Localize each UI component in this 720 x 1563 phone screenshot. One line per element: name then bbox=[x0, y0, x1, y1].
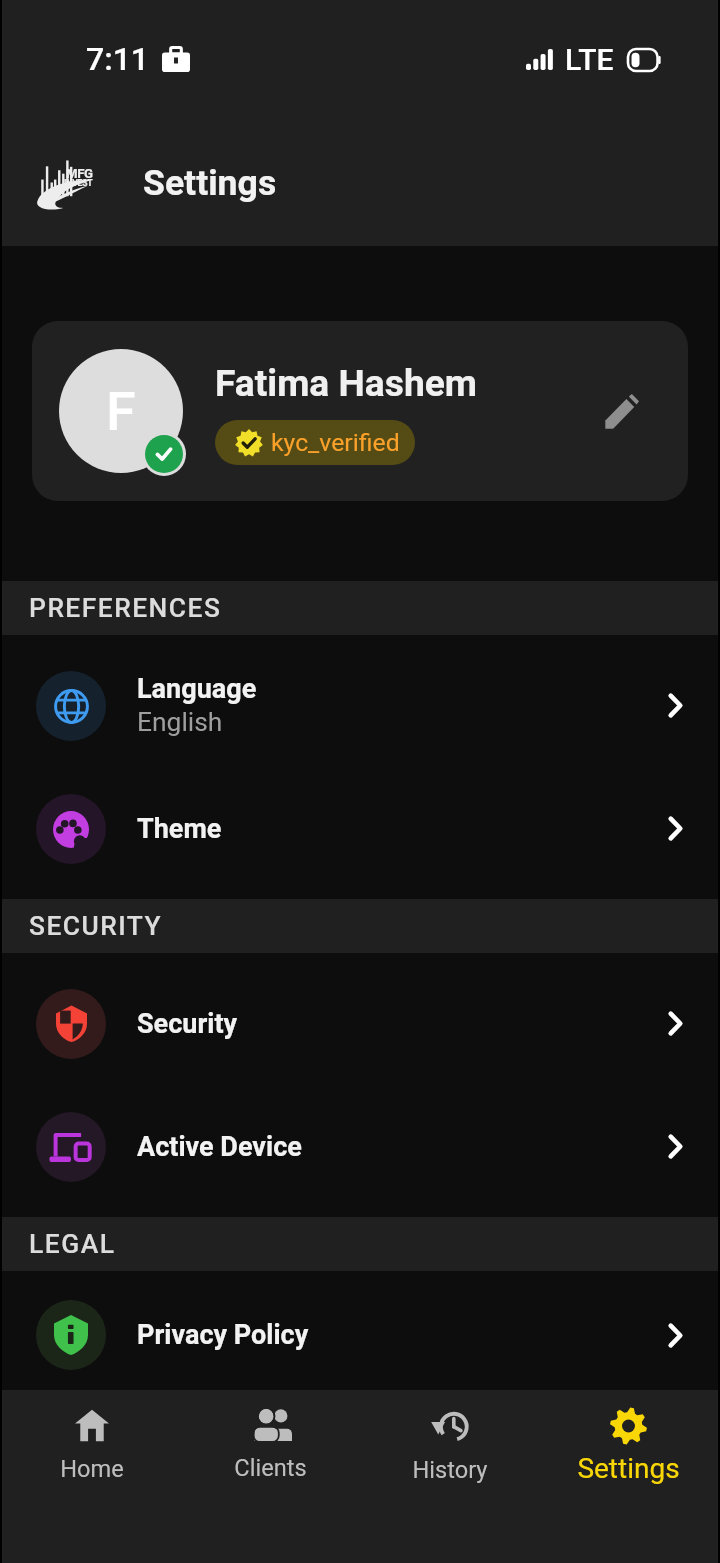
staticText: Active Device bbox=[137, 1131, 302, 1163]
staticText: LTE bbox=[565, 42, 614, 77]
staticText: Settings bbox=[143, 162, 277, 204]
staticText: PREFERENCES bbox=[29, 593, 222, 624]
staticText: INVEST bbox=[64, 178, 93, 188]
button[interactable]: Security bbox=[2, 962, 718, 1085]
staticText: Security bbox=[137, 1008, 238, 1040]
staticText: MFG bbox=[66, 166, 93, 181]
button[interactable]: Edit profile bbox=[595, 375, 649, 447]
staticText: 7:11 bbox=[86, 40, 150, 78]
staticText: Home bbox=[60, 1455, 124, 1483]
button[interactable]: Active Device bbox=[2, 1085, 718, 1208]
staticText: Settings bbox=[577, 1452, 680, 1485]
button[interactable]: Language bbox=[2, 644, 718, 767]
button[interactable]: F bbox=[32, 321, 688, 501]
staticText: LEGAL bbox=[29, 1229, 116, 1260]
button[interactable]: History bbox=[360, 1390, 539, 1563]
staticText: Fatima Hashem bbox=[215, 361, 478, 405]
staticText: History bbox=[412, 1456, 488, 1484]
button[interactable]: Settings bbox=[539, 1390, 718, 1563]
staticText: Language bbox=[137, 673, 257, 705]
staticText: kyc_verified bbox=[271, 428, 400, 457]
staticText: English bbox=[137, 707, 223, 738]
staticText: Clients bbox=[234, 1454, 307, 1482]
staticText: F bbox=[106, 380, 136, 443]
staticText: SECURITY bbox=[29, 911, 163, 942]
button[interactable]: Home bbox=[2, 1390, 181, 1563]
staticText: Privacy Policy bbox=[137, 1319, 309, 1351]
button[interactable]: Theme bbox=[2, 767, 718, 890]
button[interactable]: Privacy Policy bbox=[2, 1280, 718, 1390]
staticText: Theme bbox=[137, 813, 222, 845]
button[interactable]: Clients bbox=[181, 1390, 360, 1563]
